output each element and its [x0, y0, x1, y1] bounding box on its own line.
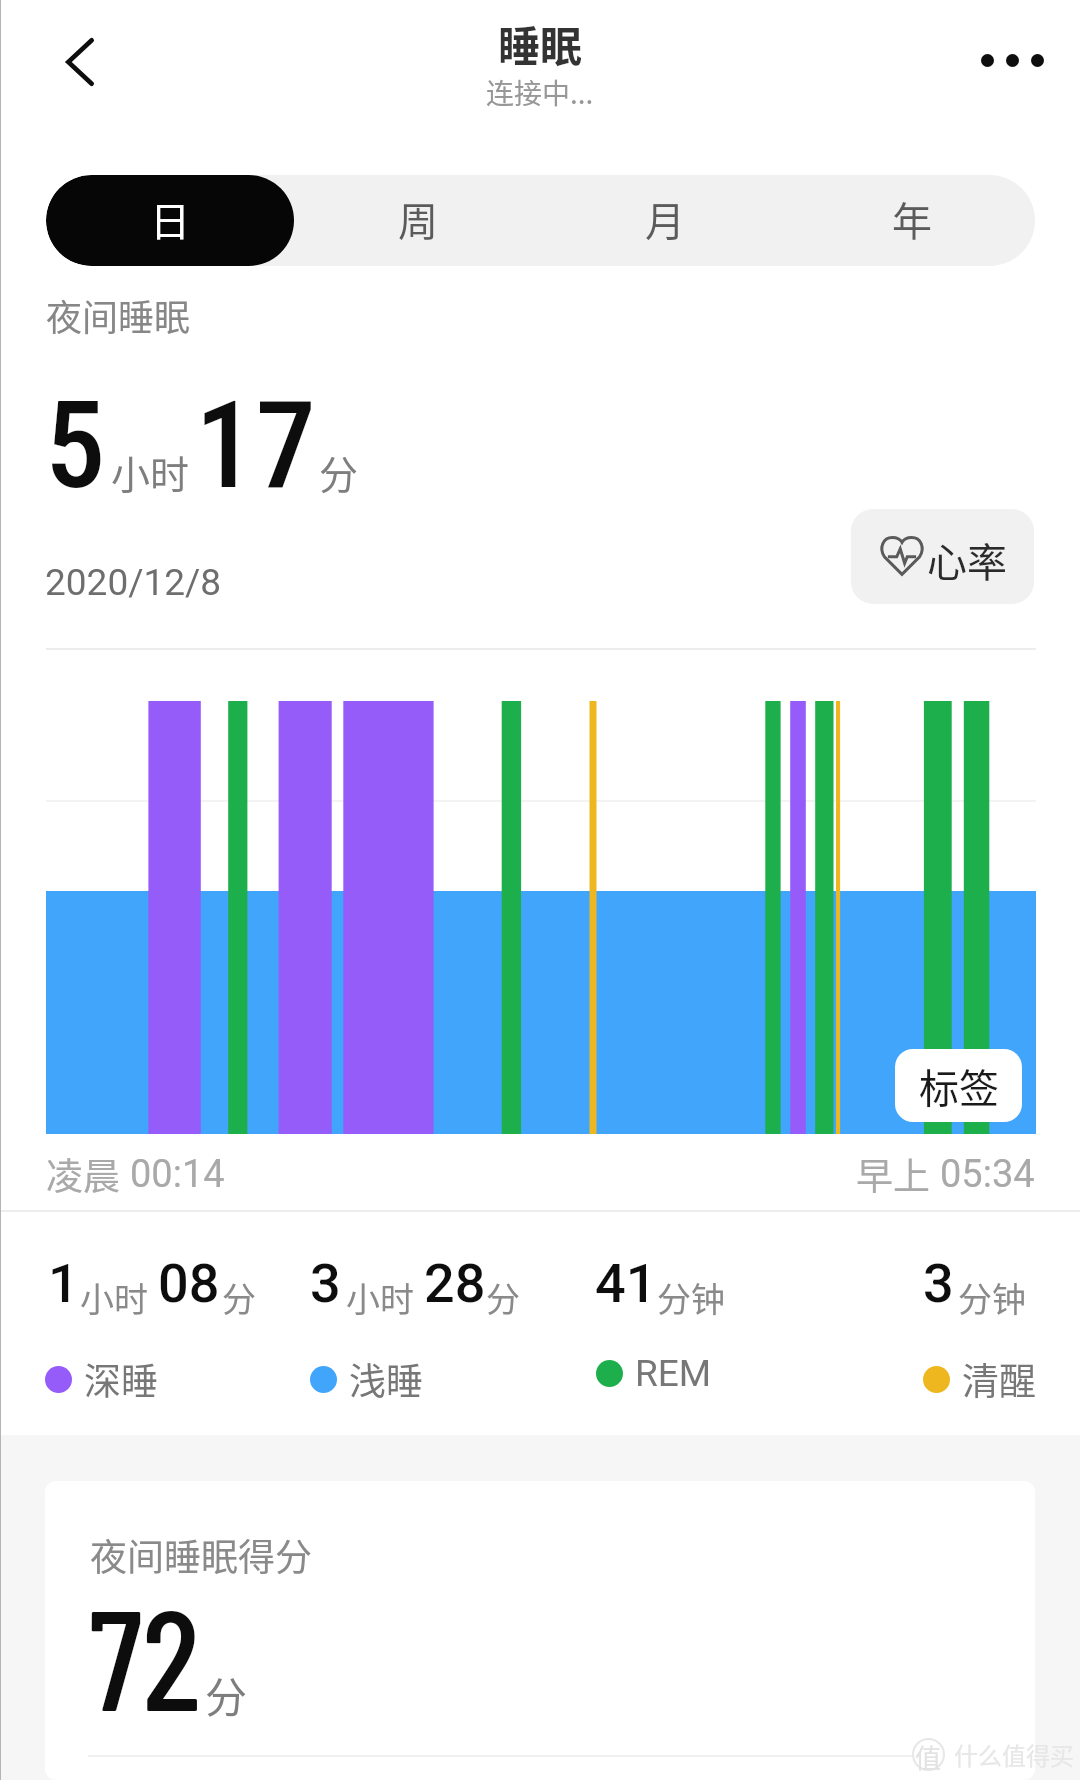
button[interactable]: 浅睡: [310, 1352, 423, 1406]
button[interactable]: 周: [294, 175, 541, 266]
staticText: 5: [45, 375, 106, 517]
staticText: 早上: [856, 1147, 930, 1201]
staticText: 分: [205, 1664, 248, 1725]
button[interactable]: More options: [960, 8, 1064, 112]
button[interactable]: 心率: [851, 509, 1034, 604]
staticText: 分钟: [958, 1273, 1026, 1322]
staticText: 小时: [346, 1273, 414, 1322]
staticText: 3: [310, 1252, 341, 1315]
staticText: 浅睡: [349, 1352, 423, 1406]
staticText: 08: [158, 1252, 220, 1315]
staticText: 分: [319, 444, 359, 500]
button[interactable]: 年: [788, 175, 1035, 266]
button[interactable]: 夜间睡眠得分: [45, 1481, 1035, 1780]
staticText: 深睡: [84, 1352, 158, 1406]
staticText: 睡眠: [498, 13, 583, 74]
staticText: 夜间睡眠: [46, 289, 191, 341]
staticText: 05:34: [940, 1152, 1035, 1197]
staticText: 分: [222, 1273, 256, 1322]
staticText: 连接中...: [486, 72, 594, 113]
staticText: 分钟: [657, 1273, 725, 1322]
staticText: 分: [486, 1273, 520, 1322]
staticText: 心率: [927, 531, 1007, 589]
button[interactable]: 清醒: [923, 1352, 1036, 1406]
staticText: 小时: [111, 444, 190, 500]
staticText: 清醒: [962, 1352, 1036, 1406]
staticText: 3: [923, 1252, 954, 1315]
staticText: 00:14: [130, 1152, 225, 1197]
staticText: 什么值得买: [954, 1737, 1074, 1772]
staticText: REM: [635, 1352, 712, 1395]
button[interactable]: 标签: [895, 1049, 1022, 1122]
button[interactable]: REM: [596, 1352, 712, 1395]
staticText: 28: [424, 1252, 486, 1315]
staticText: 周: [398, 190, 438, 248]
staticText: 2020/12/8: [45, 561, 222, 604]
staticText: 41: [595, 1252, 657, 1315]
button[interactable]: 月: [541, 175, 788, 266]
staticText: 1: [48, 1252, 79, 1315]
button[interactable]: Back: [28, 10, 132, 114]
staticText: 年: [892, 190, 932, 248]
staticText: 值: [915, 1738, 942, 1771]
staticText: 月: [645, 190, 685, 248]
button[interactable]: 深睡: [45, 1352, 158, 1406]
staticText: 凌晨: [46, 1147, 120, 1201]
staticText: 小时: [80, 1273, 148, 1322]
staticText: 标签: [919, 1057, 999, 1115]
staticText: 日: [150, 190, 190, 248]
staticText: 72: [89, 1571, 201, 1739]
staticText: 夜间睡眠得分: [90, 1528, 312, 1582]
staticText: 17: [195, 375, 316, 517]
button[interactable]: 日: [46, 175, 294, 266]
